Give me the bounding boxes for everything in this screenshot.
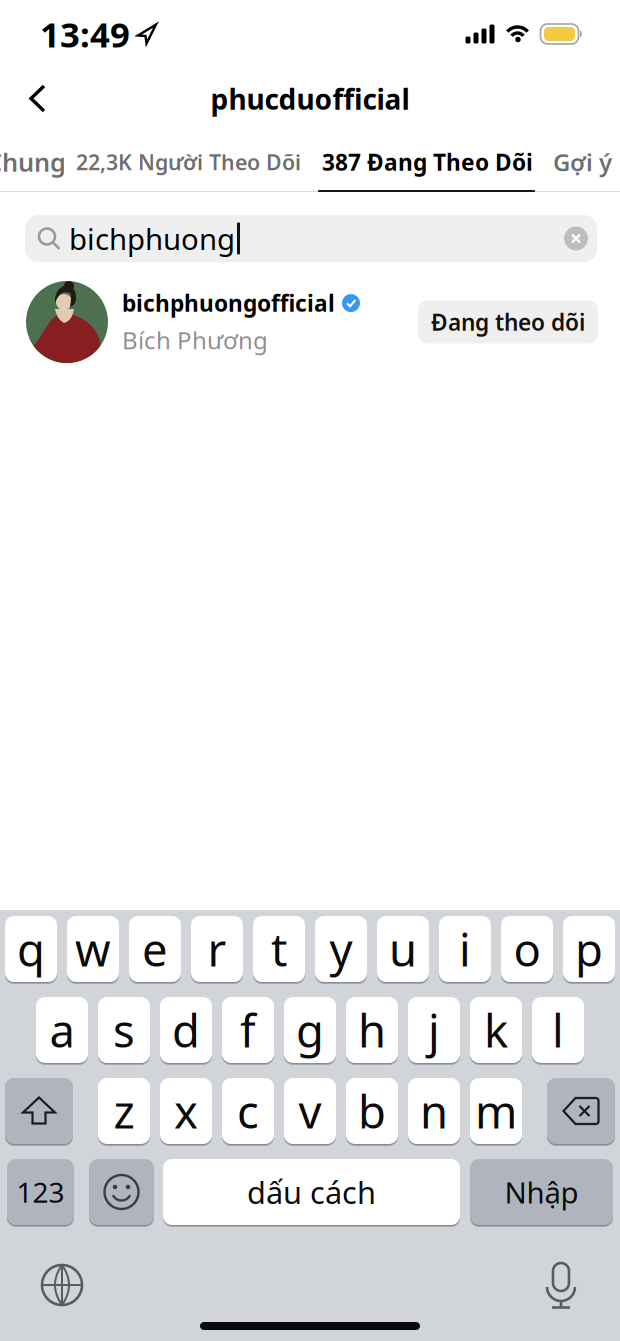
button[interactable]: Dictation: [540, 1261, 582, 1309]
staticText: y: [329, 919, 352, 979]
staticText: d: [172, 1000, 200, 1060]
button[interactable]: t: [253, 916, 305, 982]
staticText: Chung: [0, 145, 66, 179]
button[interactable]: z: [98, 1078, 150, 1144]
button[interactable]: w: [67, 916, 119, 982]
button[interactable]: 387 Đang Theo Dõi: [322, 139, 533, 185]
staticText: Bích Phương: [122, 324, 268, 356]
staticText: o: [513, 919, 540, 979]
staticText: bichphuong: [69, 219, 235, 258]
button[interactable]: x: [160, 1078, 212, 1144]
staticText: q: [17, 919, 45, 979]
button[interactable]: Nhập: [470, 1159, 613, 1225]
button[interactable]: 22,3K Người Theo Dõi: [76, 140, 301, 184]
button[interactable]: c: [222, 1078, 274, 1144]
staticText: j: [428, 1000, 440, 1060]
staticText: x: [174, 1081, 198, 1141]
button[interactable]: s: [98, 997, 150, 1063]
button[interactable]: Back: [0, 72, 48, 126]
button[interactable]: n: [408, 1078, 460, 1144]
button[interactable]: Delete: [547, 1078, 615, 1144]
button[interactable]: Chung: [0, 137, 66, 187]
staticText: 123: [16, 1173, 64, 1211]
staticText: Gợi ý: [553, 146, 612, 178]
staticText: Nhập: [504, 1172, 578, 1211]
button[interactable]: q: [5, 916, 57, 982]
button[interactable]: d: [160, 997, 212, 1063]
staticText: t: [271, 919, 287, 979]
button[interactable]: a: [36, 997, 88, 1063]
staticText: c: [237, 1081, 259, 1141]
button[interactable]: h: [346, 997, 398, 1063]
staticText: 22,3K Người Theo Dõi: [76, 148, 301, 176]
staticText: bichphuongofficial: [122, 288, 335, 318]
button[interactable]: o: [501, 916, 553, 982]
staticText: b: [358, 1081, 386, 1141]
staticText: k: [484, 1000, 508, 1060]
staticText: f: [240, 1000, 256, 1060]
button[interactable]: Đang theo dõi: [418, 300, 598, 343]
staticText: 13:49: [40, 11, 130, 57]
staticText: z: [113, 1081, 134, 1141]
button[interactable]: f: [222, 997, 274, 1063]
staticText: v: [298, 1081, 321, 1141]
staticText: l: [552, 1000, 564, 1060]
button[interactable]: p: [563, 916, 615, 982]
button[interactable]: Shift: [5, 1078, 73, 1144]
button[interactable]: g: [284, 997, 336, 1063]
staticText: n: [420, 1081, 448, 1141]
staticText: s: [113, 1000, 135, 1060]
button[interactable]: y: [315, 916, 367, 982]
staticText: Đang theo dõi: [431, 307, 585, 337]
button[interactable]: Emoji: [89, 1159, 154, 1225]
staticText: a: [49, 1000, 74, 1060]
button[interactable]: i: [439, 916, 491, 982]
staticText: g: [296, 1000, 324, 1060]
button[interactable]: e: [129, 916, 181, 982]
staticText: i: [459, 919, 471, 979]
staticText: phucduofficial: [210, 80, 409, 118]
button[interactable]: dấu cách: [163, 1159, 460, 1225]
staticText: e: [142, 919, 168, 979]
staticText: h: [358, 1000, 386, 1060]
button[interactable]: r: [191, 916, 243, 982]
staticText: u: [389, 919, 417, 979]
button[interactable]: Next keyboard: [42, 1265, 82, 1305]
button[interactable]: Clear search text: [564, 216, 597, 260]
button[interactable]: u: [377, 916, 429, 982]
staticText: 387 Đang Theo Dõi: [322, 147, 533, 177]
button[interactable]: k: [470, 997, 522, 1063]
button[interactable]: j: [408, 997, 460, 1063]
button[interactable]: b: [346, 1078, 398, 1144]
button[interactable]: 123: [7, 1159, 74, 1225]
staticText: dấu cách: [247, 1172, 376, 1212]
button[interactable]: Gợi ý: [553, 138, 612, 186]
button[interactable]: bichphuongofficial: [0, 281, 360, 363]
staticText: p: [575, 919, 603, 979]
staticText: r: [207, 919, 226, 979]
staticText: m: [475, 1081, 517, 1141]
staticText: w: [75, 919, 111, 979]
button[interactable]: m: [470, 1078, 522, 1144]
button[interactable]: l: [532, 997, 584, 1063]
button[interactable]: v: [284, 1078, 336, 1144]
